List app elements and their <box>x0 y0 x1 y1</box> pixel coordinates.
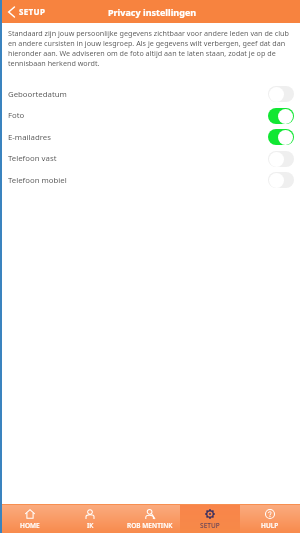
button[interactable]: Foto <box>0 105 300 126</box>
staticText: HULP <box>261 521 279 530</box>
staticText: Standaard zijn jouw persoonlijke gegeven… <box>8 28 290 68</box>
other: Back <box>8 7 15 17</box>
button[interactable]: Back <box>0 2 54 21</box>
staticText: SETUP <box>19 6 46 17</box>
staticText: IK <box>87 521 94 530</box>
button[interactable]: HOME <box>0 504 60 533</box>
button[interactable]: E-mailadres <box>0 126 300 148</box>
staticText: Privacy instellingen <box>108 6 197 18</box>
staticText: Telefoon mobiel <box>8 175 67 186</box>
staticText: HOME <box>20 521 40 530</box>
button[interactable]: SETUP <box>180 504 240 533</box>
staticText: Telefoon vast <box>8 153 57 164</box>
button[interactable]: Geboortedatum <box>0 83 300 105</box>
staticText: E-mailadres <box>8 132 51 143</box>
button[interactable]: Telefoon vast <box>0 148 300 169</box>
staticText: Foto <box>8 110 25 121</box>
button[interactable]: ROB MENTINK <box>120 504 180 533</box>
button[interactable]: HULP <box>240 504 300 533</box>
staticText: Geboortedatum <box>8 89 67 100</box>
staticText: SETUP <box>200 521 220 530</box>
button[interactable]: Telefoon mobiel <box>0 169 300 191</box>
staticText: ROB MENTINK <box>127 521 173 530</box>
button[interactable]: IK <box>60 504 120 533</box>
